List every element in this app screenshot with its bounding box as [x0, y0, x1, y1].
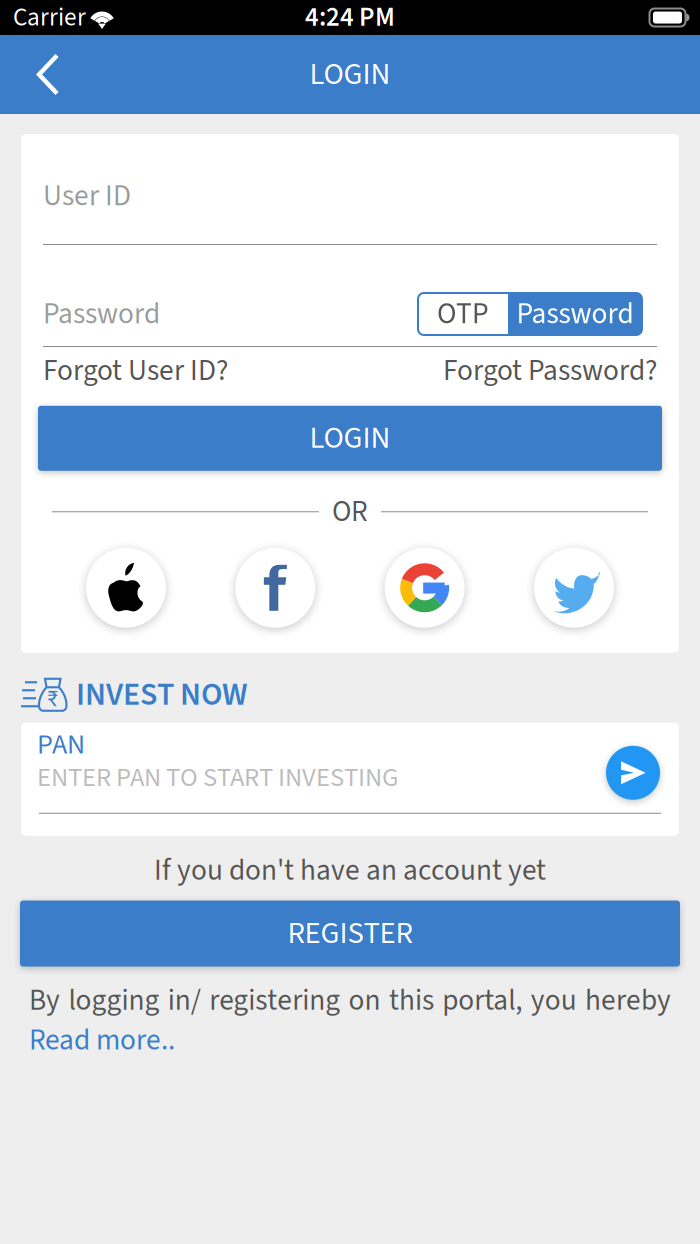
- staticText: LOGIN: [309, 53, 390, 96]
- button[interactable]: OTP: [418, 293, 508, 335]
- staticText: Read more..: [29, 1019, 175, 1061]
- staticText: Carrier: [13, 0, 86, 36]
- staticText: ENTER PAN TO START INVESTING: [37, 759, 398, 797]
- staticText: 4:24 PM: [305, 0, 395, 36]
- staticText: PAN: [37, 725, 85, 765]
- staticText: in/: [168, 980, 201, 1021]
- staticText: REGISTER: [287, 912, 412, 955]
- staticText: OTP: [437, 293, 489, 335]
- staticText: this: [389, 980, 434, 1021]
- button[interactable]: Forgot User ID?: [43, 347, 228, 395]
- button[interactable]: REGISTER: [20, 900, 680, 966]
- staticText: you: [531, 980, 577, 1021]
- staticText: portal,: [442, 980, 522, 1021]
- button[interactable]: Password: [508, 293, 642, 335]
- button[interactable]: Submit PAN: [604, 733, 662, 791]
- button[interactable]: Forgot Password?: [443, 347, 657, 395]
- staticText: hereby: [585, 980, 671, 1021]
- staticText: Password: [516, 293, 633, 335]
- staticText: Password: [43, 293, 160, 335]
- staticText: registering: [209, 980, 340, 1021]
- button[interactable]: Read more..: [29, 1019, 671, 1061]
- staticText: OR: [332, 491, 368, 533]
- button[interactable]: Sign in with Apple: [83, 545, 169, 631]
- staticText: If you don't have an account yet: [154, 850, 546, 892]
- staticText: ₹: [46, 682, 58, 716]
- staticText: INVEST NOW: [76, 672, 248, 718]
- button[interactable]: Sign in with Twitter: [531, 545, 617, 631]
- staticText: By: [29, 980, 60, 1021]
- staticText: LOGIN: [309, 416, 390, 460]
- staticText: Forgot User ID?: [43, 350, 228, 392]
- button[interactable]: Sign in with Facebook: [232, 545, 318, 631]
- staticText: User ID: [43, 175, 131, 217]
- button[interactable]: Sign in with Google: [382, 545, 468, 631]
- button[interactable]: LOGIN: [38, 406, 662, 471]
- staticText: on: [348, 980, 380, 1021]
- staticText: Forgot Password?: [443, 350, 657, 392]
- button[interactable]: Back: [0, 36, 84, 112]
- staticText: logging: [68, 980, 159, 1021]
